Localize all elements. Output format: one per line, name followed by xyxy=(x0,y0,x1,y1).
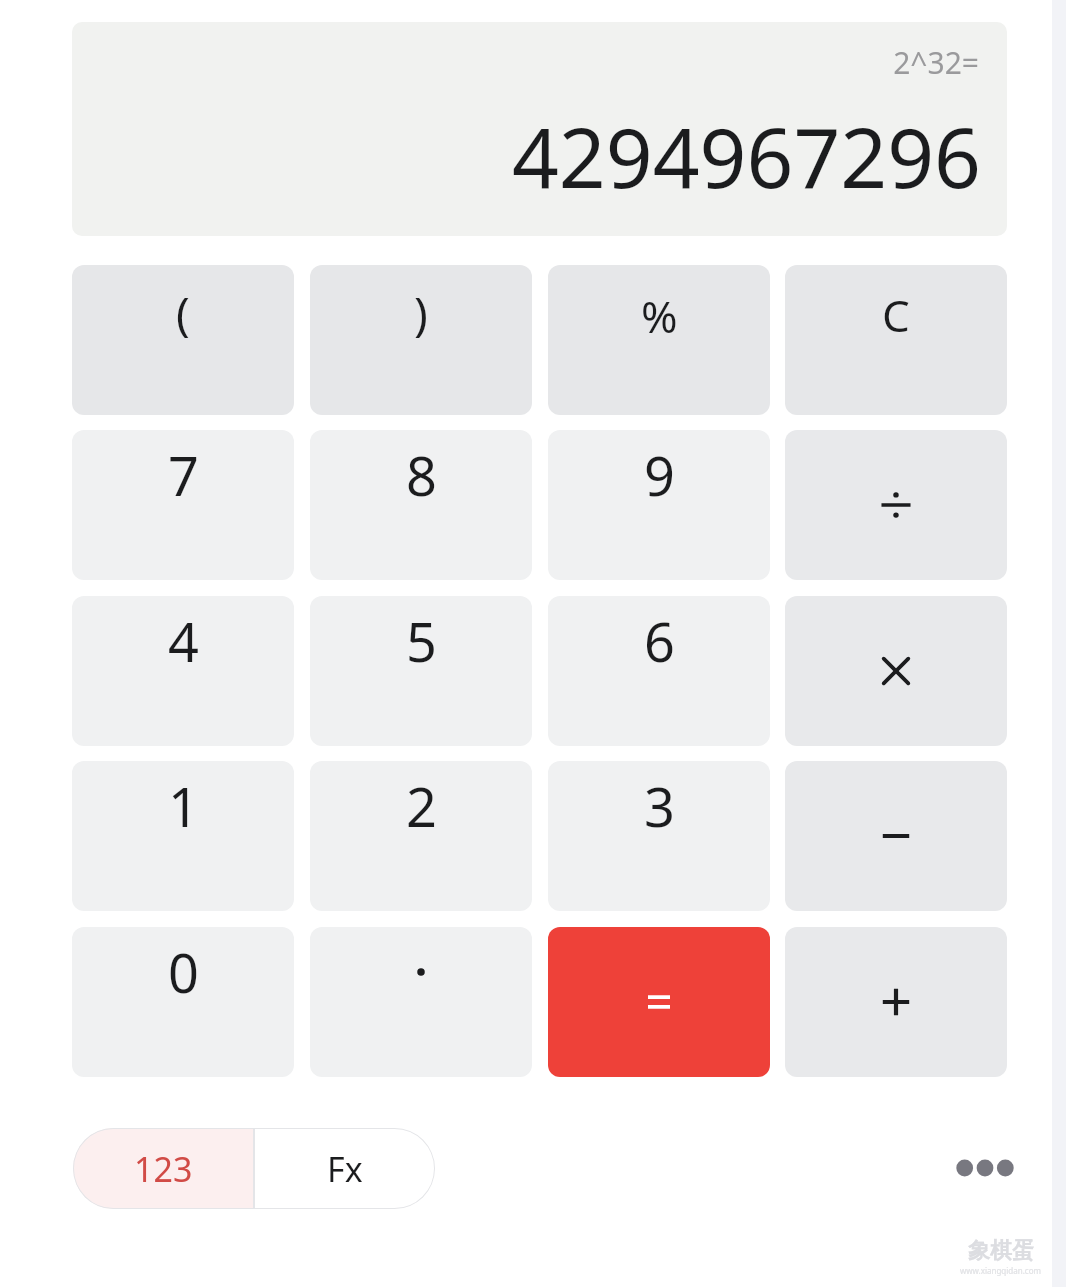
button[interactable]: % xyxy=(548,265,770,415)
button[interactable]: − xyxy=(785,761,1007,911)
button[interactable]: C xyxy=(785,265,1007,415)
staticText: 2 xyxy=(406,769,437,843)
button[interactable]: ) xyxy=(310,265,532,415)
button[interactable]: 4 xyxy=(72,596,294,746)
button[interactable]: 5 xyxy=(310,596,532,746)
button[interactable]: ÷ xyxy=(785,430,1007,580)
staticText: Fx xyxy=(327,1146,363,1192)
button[interactable]: 6 xyxy=(548,596,770,746)
button[interactable]: + xyxy=(785,927,1007,1077)
staticText: 5 xyxy=(406,604,437,678)
button[interactable]: More options xyxy=(930,1122,1040,1214)
staticText: 象棋蛋 xyxy=(968,1237,1034,1265)
staticText: 9 xyxy=(644,438,675,512)
staticText: 2^32= xyxy=(893,42,979,83)
staticText: 1 xyxy=(168,769,199,843)
button[interactable]: 3 xyxy=(548,761,770,911)
staticText: 123 xyxy=(134,1146,193,1192)
button[interactable]: = xyxy=(548,927,770,1077)
staticText: C xyxy=(882,285,910,345)
button[interactable]: Fx xyxy=(254,1128,435,1209)
staticText: 6 xyxy=(644,604,675,678)
button[interactable]: × xyxy=(785,596,1007,746)
button[interactable]: 123 xyxy=(73,1128,254,1209)
button[interactable]: 7 xyxy=(72,430,294,580)
button[interactable]: 8 xyxy=(310,430,532,580)
button[interactable]: . xyxy=(310,927,532,1077)
button[interactable]: ( xyxy=(72,265,294,415)
staticText: 0 xyxy=(168,935,199,1009)
staticText: % xyxy=(641,286,678,346)
button[interactable]: 0 xyxy=(72,927,294,1077)
staticText: 3 xyxy=(644,769,675,843)
staticText: 7 xyxy=(168,438,199,512)
staticText: ) xyxy=(414,282,428,345)
staticText: 4 xyxy=(168,604,199,678)
button[interactable]: 9 xyxy=(548,430,770,580)
staticText: 8 xyxy=(406,438,437,512)
staticText: 4294967296 xyxy=(511,100,981,212)
button[interactable]: 1 xyxy=(72,761,294,911)
staticText: www.xiangqidan.com xyxy=(960,1265,1041,1276)
staticText: ( xyxy=(176,282,190,345)
button[interactable]: 2 xyxy=(310,761,532,911)
